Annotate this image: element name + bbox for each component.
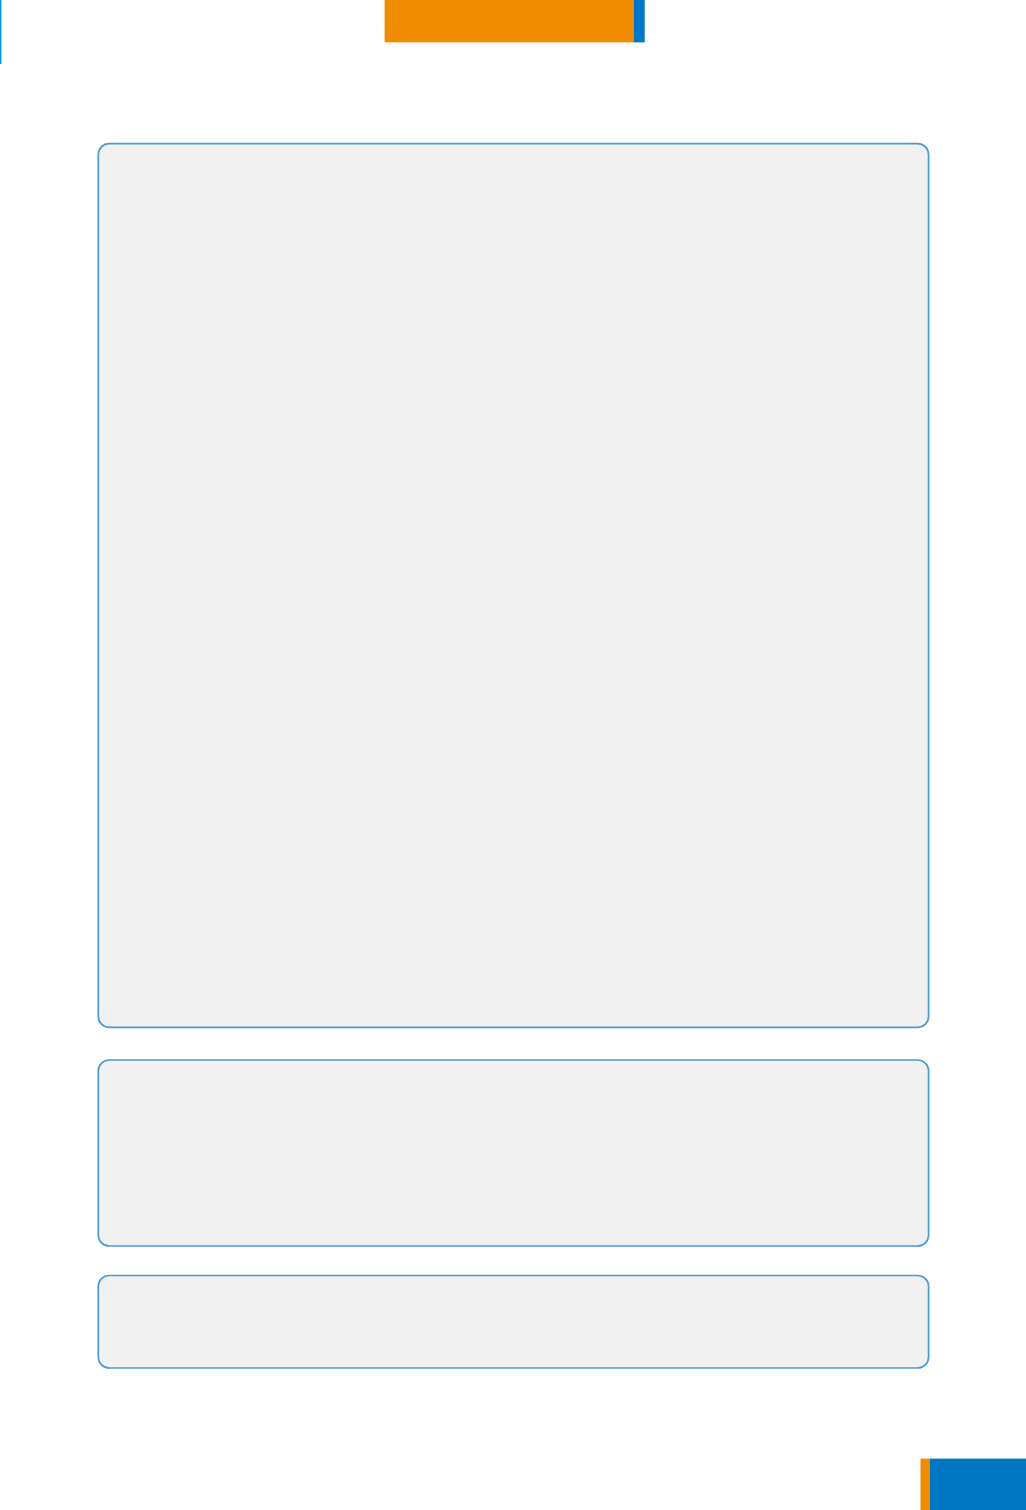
button[interactable]: Bottom action [920,1458,1026,1510]
button[interactable]: Main content card [97,142,930,1028]
button[interactable]: Third content card [97,1274,930,1369]
button[interactable]: Primary action [384,0,645,43]
button[interactable]: Second content card [97,1059,930,1248]
